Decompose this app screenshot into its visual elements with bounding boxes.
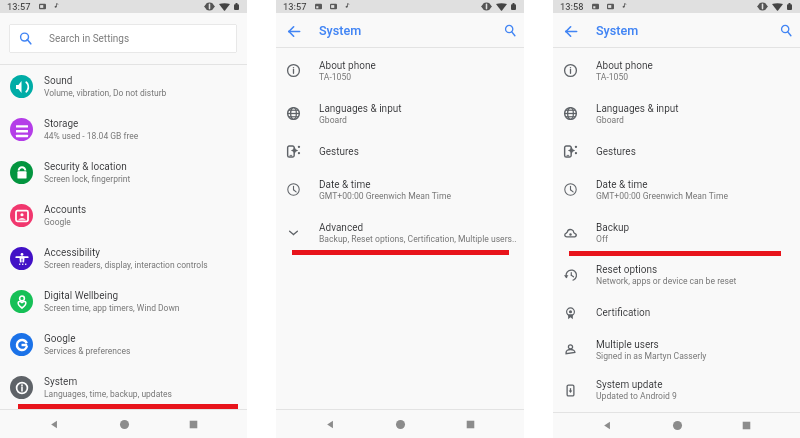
button[interactable]: Accounts <box>0 194 247 237</box>
button[interactable]: System <box>0 366 247 409</box>
staticText: Network, apps or device can be reset <box>596 276 737 286</box>
button[interactable]: About phone <box>553 49 800 92</box>
button[interactable]: About phone <box>276 49 524 92</box>
button[interactable]: Back <box>319 413 341 435</box>
staticText: Screen time, app timers, Wind Down <box>44 303 180 313</box>
staticText: Date & time <box>319 179 371 191</box>
button[interactable]: Search in Settings <box>9 24 237 53</box>
button[interactable]: Search <box>500 21 520 41</box>
button[interactable]: Accessibility <box>0 237 247 280</box>
button[interactable]: Languages & input <box>276 92 524 135</box>
button[interactable]: Navigate up <box>285 22 303 40</box>
button[interactable]: Date & time <box>276 168 524 211</box>
staticText: Services & preferences <box>44 346 131 356</box>
staticText: Gboard <box>319 115 347 125</box>
button[interactable]: Backup <box>553 211 800 255</box>
staticText: Date & time <box>596 179 648 191</box>
staticText: System <box>44 376 78 388</box>
staticText: Google <box>44 333 76 345</box>
staticText: Backup, Reset options, Certification, Mu… <box>319 234 517 244</box>
staticText: TA-1050 <box>596 72 629 82</box>
staticText: About phone <box>596 60 653 72</box>
staticText: Languages & input <box>596 103 679 115</box>
staticText: Gestures <box>319 146 359 158</box>
staticText: Gboard <box>596 115 624 125</box>
staticText: GMT+00:00 Greenwich Mean Time <box>319 191 451 201</box>
staticText: Sound <box>44 75 73 87</box>
button[interactable]: Search <box>776 21 796 41</box>
button[interactable]: Security & location <box>0 151 247 194</box>
button[interactable]: Reset options <box>553 255 800 295</box>
staticText: Security & location <box>44 161 127 173</box>
staticText: 44% used - 18.04 GB free <box>44 131 139 141</box>
staticText: GMT+00:00 Greenwich Mean Time <box>596 191 728 201</box>
button[interactable]: System update <box>553 368 800 412</box>
button[interactable]: Digital Wellbeing <box>0 280 247 323</box>
staticText: Languages & input <box>319 103 402 115</box>
button[interactable]: Home <box>113 413 135 435</box>
staticText: Accounts <box>44 204 87 216</box>
staticText: Screen readers, display, interaction con… <box>44 260 208 270</box>
button[interactable]: Multiple users <box>553 331 800 368</box>
staticText: Backup <box>596 222 630 234</box>
staticText: Off <box>596 234 608 244</box>
staticText: Accessibility <box>44 247 100 259</box>
staticText: 13:57 <box>7 1 31 12</box>
button[interactable]: Recent apps <box>459 413 481 435</box>
staticText: Reset options <box>596 264 658 276</box>
staticText: TA-1050 <box>319 72 352 82</box>
button[interactable]: Back <box>43 413 65 435</box>
staticText: Multiple users <box>596 339 659 351</box>
staticText: Advanced <box>319 222 364 234</box>
staticText: Screen lock, fingerprint <box>44 174 131 184</box>
button[interactable]: Sound <box>0 65 247 108</box>
button[interactable]: Date & time <box>553 168 800 211</box>
staticText: 13:58 <box>560 1 584 12</box>
button[interactable]: Gestures <box>276 135 524 168</box>
button[interactable]: Home <box>666 414 688 436</box>
staticText: Languages, time, backup, updates <box>44 389 172 399</box>
staticText: Search in Settings <box>49 33 130 45</box>
button[interactable]: Recent apps <box>182 413 204 435</box>
staticText: System <box>596 23 639 38</box>
staticText: Google <box>44 217 71 227</box>
button[interactable]: Advanced <box>276 211 524 254</box>
button[interactable]: Storage <box>0 108 247 151</box>
button[interactable]: Google <box>0 323 247 366</box>
staticText: Signed in as Martyn Casserly <box>596 351 707 361</box>
button[interactable]: Certification <box>553 295 800 331</box>
button[interactable]: Home <box>389 413 411 435</box>
staticText: About phone <box>319 60 376 72</box>
staticText: Updated to Android 9 <box>596 391 677 401</box>
staticText: System <box>319 23 362 38</box>
button[interactable]: Gestures <box>553 135 800 168</box>
staticText: 13:57 <box>283 1 307 12</box>
staticText: Volume, vibration, Do not disturb <box>44 88 167 98</box>
button[interactable]: Recent apps <box>735 414 757 436</box>
button[interactable]: Languages & input <box>553 92 800 135</box>
staticText: Digital Wellbeing <box>44 290 119 302</box>
staticText: Storage <box>44 118 79 130</box>
staticText: System update <box>596 379 663 391</box>
staticText: Certification <box>596 307 651 319</box>
button[interactable]: Navigate up <box>562 22 580 40</box>
button[interactable]: Back <box>596 414 618 436</box>
staticText: Gestures <box>596 146 636 158</box>
